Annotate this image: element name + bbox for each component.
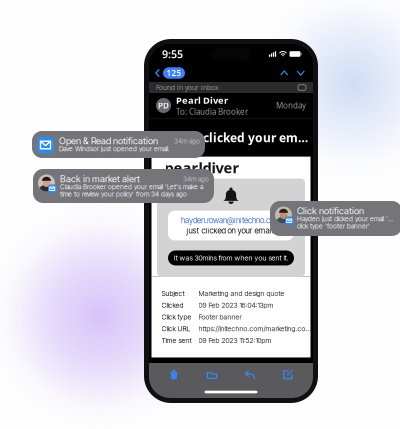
staticText: Pearl Diver xyxy=(176,94,228,106)
staticText: Back in market alert xyxy=(60,173,140,184)
staticText: https://initechno.com/marketing.com xyxy=(198,325,310,333)
staticText: 09 Feb 2023 16:04:13pm xyxy=(198,301,273,309)
staticText: PD xyxy=(158,100,169,111)
staticText: Hayden just clicked your email 'Marketin… xyxy=(297,215,393,223)
staticText: Click type xyxy=(161,313,191,321)
staticText: To: Claudia Brooker xyxy=(176,106,248,117)
staticText: Click URL xyxy=(161,325,190,333)
button[interactable]: 125 xyxy=(149,64,185,82)
staticText: Subject xyxy=(161,289,184,298)
staticText: 9:55 xyxy=(162,47,183,61)
button[interactable]: Delete xyxy=(161,363,187,385)
staticText: Hayden clicked your email. xyxy=(154,130,313,145)
staticText: Footer banner xyxy=(198,313,241,321)
staticText: Dave Windsor just opened your email. xyxy=(59,145,170,153)
staticText: 125 xyxy=(166,68,181,78)
staticText: Monday xyxy=(276,100,306,111)
staticText: Marketing and design quote xyxy=(198,289,284,298)
staticText: Found in your inbox xyxy=(156,83,219,92)
staticText: click type 'footer banner' xyxy=(297,222,370,230)
button[interactable]: Reply xyxy=(237,363,263,385)
staticText: hayden.rowan@initechno.com xyxy=(181,216,281,225)
button[interactable]: Open & Read notification xyxy=(32,131,205,158)
staticText: Claudia Brooker opened your email 'Let's… xyxy=(60,183,203,191)
staticText: 34m ago xyxy=(183,175,209,183)
staticText: just clicked on your email. xyxy=(186,226,275,235)
staticText: Clicked xyxy=(161,301,183,309)
button[interactable]: Click notification xyxy=(270,201,400,236)
staticText: Open & Read notification xyxy=(59,135,158,146)
staticText: Time sent xyxy=(161,336,191,345)
button[interactable]: Back in market alert xyxy=(33,169,214,203)
staticText: pearldiver xyxy=(164,158,239,177)
button[interactable]: Next message xyxy=(292,65,309,81)
button[interactable]: Compose xyxy=(275,363,301,385)
staticText: 09 Feb 2023 11:52:10pm xyxy=(198,336,271,345)
staticText: Click notification xyxy=(297,205,364,216)
staticText: 34m ago xyxy=(174,137,200,145)
staticText: time to review your policy' from 34 days… xyxy=(60,190,187,198)
button[interactable]: Move to folder xyxy=(199,363,225,385)
staticText: It was 30mins from when you sent it. xyxy=(173,254,288,262)
button[interactable]: Previous message xyxy=(276,65,292,81)
